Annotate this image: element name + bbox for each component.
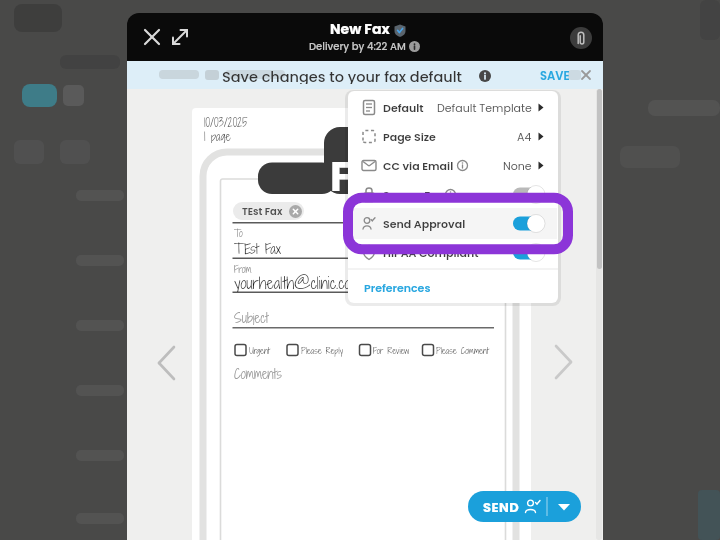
- staticText: Save changes to your fax default: [222, 67, 462, 84]
- button[interactable]: [546, 341, 580, 383]
- button[interactable]: CC via Email: [349, 153, 557, 178]
- staticText: SAVE: [540, 68, 570, 83]
- button[interactable]: Page Size: [349, 124, 557, 149]
- staticText: Delivery by 4:22 AM: [309, 39, 406, 53]
- button[interactable]: [166, 23, 194, 51]
- staticText: F: [330, 149, 352, 194]
- staticText: TEst Fax: [242, 204, 283, 218]
- button[interactable]: Default: [349, 95, 557, 120]
- staticText: HIPAA Compliant: [383, 245, 479, 260]
- staticText: Please Comment: [436, 344, 489, 356]
- staticText: Secure Fax: [383, 187, 444, 202]
- button[interactable]: [548, 491, 581, 522]
- staticText: Default: [383, 100, 424, 115]
- button[interactable]: [138, 23, 166, 51]
- button[interactable]: Send Approval: [349, 211, 557, 236]
- staticText: To: [234, 226, 243, 239]
- staticText: Send Approval: [383, 216, 466, 231]
- button[interactable]: [468, 491, 548, 522]
- button[interactable]: [289, 205, 302, 218]
- button[interactable]: SAVE: [534, 68, 576, 83]
- staticText: yourhealth@clinic.com: [234, 272, 361, 292]
- staticText: CC via Email: [383, 158, 454, 173]
- staticText: 1 page: [204, 129, 231, 143]
- button[interactable]: Secure Fax: [349, 182, 557, 207]
- staticText: New Fax: [330, 19, 390, 37]
- staticText: Please Reply: [301, 344, 344, 356]
- button[interactable]: Preferences: [364, 279, 464, 296]
- button[interactable]: [570, 27, 592, 49]
- staticText: A4: [517, 129, 532, 144]
- staticText: Default Template: [437, 100, 532, 115]
- staticText: TEst Fax: [234, 239, 281, 256]
- staticText: Urgent: [249, 344, 270, 356]
- staticText: From: [234, 262, 252, 275]
- staticText: 10/03/2025: [204, 114, 248, 129]
- staticText: None: [503, 158, 532, 173]
- staticText: SEND: [483, 498, 520, 516]
- button[interactable]: [150, 342, 184, 384]
- staticText: Subject: [234, 308, 269, 325]
- button[interactable]: [578, 67, 594, 83]
- staticText: Comments: [234, 364, 282, 381]
- staticText: Page Size: [383, 129, 436, 144]
- button[interactable]: HIPAA Compliant: [349, 240, 557, 265]
- staticText: For Review: [373, 344, 410, 356]
- staticText: Preferences: [364, 280, 431, 295]
